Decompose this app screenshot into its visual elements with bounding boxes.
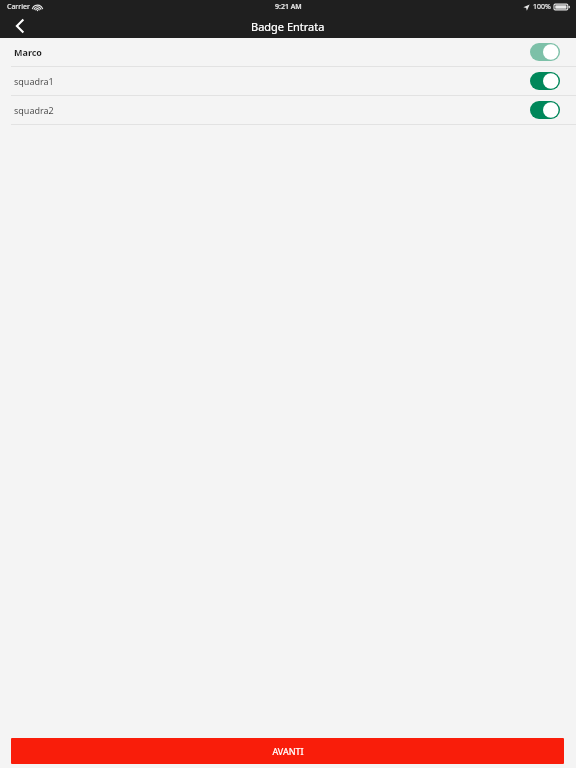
button[interactable]: Marco xyxy=(0,38,576,66)
button[interactable]: Back xyxy=(0,14,40,38)
button[interactable]: Toggle xyxy=(530,101,560,119)
button[interactable]: squadra1 xyxy=(0,67,576,95)
staticText: Badge Entrata xyxy=(251,19,325,34)
button[interactable]: AVANTI xyxy=(11,738,564,764)
staticText: 100% xyxy=(533,2,551,12)
staticText: 9:21 AM xyxy=(275,2,302,12)
button[interactable]: squadra2 xyxy=(0,96,576,124)
staticText: squadra2 xyxy=(14,104,54,116)
button[interactable]: Toggle xyxy=(530,43,560,61)
staticText: Marco xyxy=(14,46,42,58)
button[interactable]: Toggle xyxy=(530,72,560,90)
staticText: AVANTI xyxy=(272,745,304,757)
staticText: Carrier xyxy=(7,2,30,12)
staticText: squadra1 xyxy=(14,75,54,87)
